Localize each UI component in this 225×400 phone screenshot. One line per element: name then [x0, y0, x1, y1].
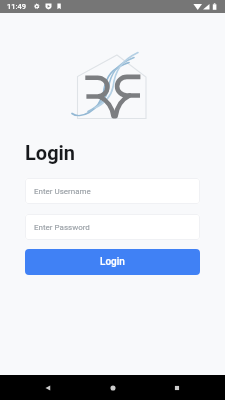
button[interactable]: Enter Username: [25, 178, 200, 204]
button[interactable]: Home: [96, 375, 130, 400]
staticText: 11:49: [7, 2, 27, 11]
staticText: Login: [100, 256, 125, 268]
staticText: Enter Username: [34, 187, 91, 196]
button[interactable]: Recent apps: [160, 375, 194, 400]
button[interactable]: Back: [31, 375, 65, 400]
staticText: Enter Password: [34, 223, 90, 232]
staticText: Login: [25, 141, 76, 164]
button[interactable]: Login: [25, 249, 200, 275]
button[interactable]: Enter Password: [25, 214, 200, 240]
